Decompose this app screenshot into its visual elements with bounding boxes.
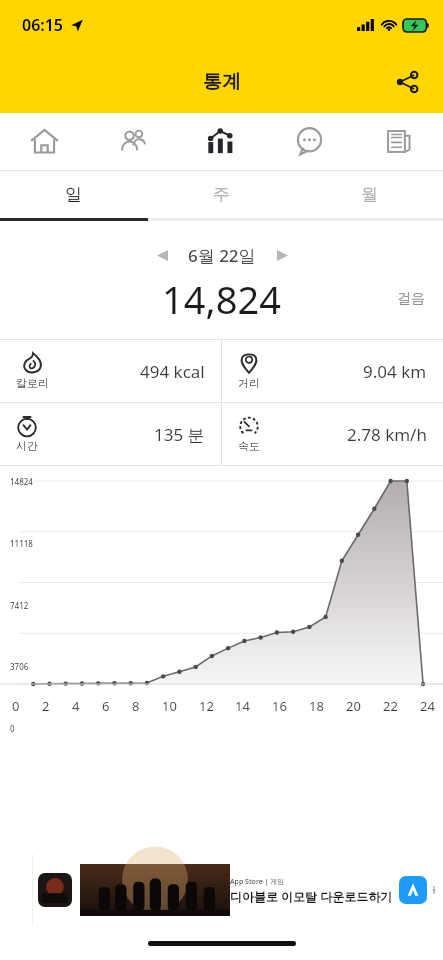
button[interactable]: Previous day — [146, 239, 178, 271]
staticText: 디아블로 이모탈 다운로드하기 — [230, 888, 393, 904]
staticText: 16 — [272, 697, 287, 715]
staticText: 24 — [420, 697, 435, 715]
button[interactable]: Ad info — [433, 880, 435, 900]
staticText: 10 — [162, 697, 177, 715]
button[interactable]: 거리 — [222, 340, 443, 402]
staticText: 14,824 — [162, 273, 281, 325]
button[interactable]: Next day — [266, 239, 298, 271]
staticText: 22 — [383, 697, 398, 715]
staticText: 0 — [12, 697, 20, 715]
staticText: 12 — [199, 697, 214, 715]
staticText: 2.78 km/h — [347, 423, 427, 446]
staticText: 시간 — [16, 439, 38, 453]
button[interactable]: Friends — [88, 113, 176, 170]
staticText: 월 — [361, 184, 378, 205]
staticText: 걸음 — [397, 290, 425, 308]
staticText: 통계 — [203, 70, 241, 94]
button[interactable]: Chat — [265, 113, 354, 170]
staticText: 주 — [213, 184, 230, 205]
button[interactable]: Statistics — [176, 113, 265, 170]
staticText: 11118 — [10, 538, 33, 549]
staticText: 06:15 — [22, 14, 64, 36]
staticText: 494 kcal — [140, 360, 205, 383]
button[interactable]: App Store | 게임 — [0, 854, 443, 926]
button[interactable]: News — [354, 113, 443, 170]
button[interactable]: 시간 — [0, 403, 221, 465]
staticText: 6월 22일 — [188, 244, 256, 267]
button[interactable]: 일 — [0, 171, 147, 218]
staticText: 4 — [72, 697, 80, 715]
button[interactable]: Home — [0, 113, 88, 170]
staticText: 9.04 km — [363, 360, 427, 383]
staticText: 135 분 — [154, 423, 205, 446]
staticText: 0 — [10, 723, 15, 734]
staticText: 18 — [309, 697, 324, 715]
button[interactable]: 월 — [295, 171, 443, 218]
button[interactable]: 주 — [147, 171, 295, 218]
staticText: 속도 — [238, 439, 260, 453]
staticText: 2 — [42, 697, 50, 715]
staticText: 8 — [132, 697, 140, 715]
staticText: 칼로리 — [16, 376, 49, 390]
staticText: 3706 — [10, 661, 29, 672]
staticText: 20 — [346, 697, 361, 715]
staticText: 6 — [102, 697, 110, 715]
staticText: 일 — [65, 184, 82, 205]
staticText: 14 — [235, 697, 250, 715]
button[interactable]: Share — [383, 58, 431, 106]
button[interactable]: 칼로리 — [0, 340, 221, 402]
staticText: App Store | 게임 — [230, 877, 285, 887]
staticText: 7412 — [10, 600, 29, 611]
button[interactable]: 속도 — [222, 403, 443, 465]
staticText: 거리 — [238, 376, 260, 390]
staticText: 14824 — [10, 476, 33, 487]
